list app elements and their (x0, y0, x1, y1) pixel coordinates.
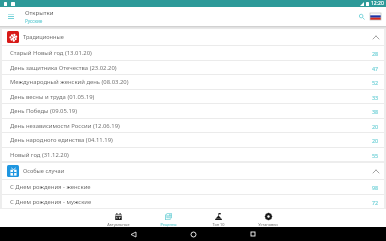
staticText: 33 (372, 94, 379, 101)
staticText: С Днем рождения - женские (10, 183, 91, 191)
staticText: 98 (372, 184, 379, 191)
button[interactable]: Актуальные (93, 209, 143, 227)
button[interactable]: Установки (243, 209, 293, 227)
staticText: 72 (372, 199, 379, 206)
button[interactable]: Search (355, 7, 368, 26)
staticText: Топ 10 (212, 222, 225, 227)
button[interactable]: Международный женский день (08.03.20) (2, 75, 384, 89)
button[interactable]: С Днем рождения - мужские (2, 195, 384, 209)
staticText: 20 (372, 137, 379, 144)
staticText: Актуальные (107, 222, 130, 227)
button[interactable]: Open navigation menu (0, 7, 22, 26)
button[interactable]: Select language (369, 7, 382, 26)
staticText: День защитника Отечества (23.02.20) (10, 64, 117, 72)
staticText: 20 (372, 123, 379, 130)
staticText: Установки (258, 222, 278, 227)
button[interactable]: День народного единства (04.11.19) (2, 133, 384, 147)
staticText: 12:20 (371, 0, 384, 7)
button[interactable]: День независимости России (12.06.19) (2, 119, 384, 133)
button[interactable]: День весны и труда (01.05.19) (2, 90, 384, 104)
staticText: Международный женский день (08.03.20) (10, 78, 129, 86)
button[interactable]: День защитника Отечества (23.02.20) (2, 61, 384, 75)
staticText: 47 (372, 65, 379, 72)
staticText: 38 (372, 108, 379, 115)
staticText: Русские (25, 18, 43, 24)
staticText: Новый год (31.12.20) (10, 151, 69, 159)
button[interactable]: День Победы (09.05.19) (2, 104, 384, 118)
staticText: Рецепты (160, 222, 177, 227)
staticText: Традиционные (23, 33, 64, 41)
staticText: День весны и труда (01.05.19) (10, 93, 95, 101)
staticText: Старый Новый год (13.01.20) (10, 49, 92, 57)
staticText: День народного единства (04.11.19) (10, 136, 113, 144)
staticText: День независимости России (12.06.19) (10, 122, 120, 130)
button[interactable]: Топ 10 (193, 209, 243, 227)
button[interactable]: Старый Новый год (13.01.20) (2, 46, 384, 60)
button[interactable]: С Днем рождения - женские (2, 180, 384, 194)
staticText: 55 (372, 152, 379, 159)
staticText: 52 (372, 79, 379, 86)
button[interactable]: Особые случаи (2, 163, 384, 179)
button[interactable]: Новый год (31.12.20) (2, 148, 384, 162)
staticText: Открытки (25, 9, 54, 17)
staticText: С Днем рождения - мужские (10, 198, 92, 206)
staticText: День Победы (09.05.19) (10, 107, 77, 115)
button[interactable]: Рецепты (143, 209, 193, 227)
button[interactable]: Традиционные (2, 29, 384, 45)
staticText: Особые случаи (23, 167, 65, 175)
staticText: 28 (372, 50, 379, 57)
